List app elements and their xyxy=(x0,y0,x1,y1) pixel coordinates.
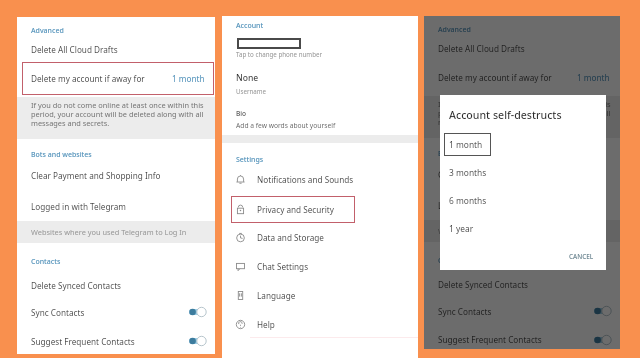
button[interactable]: Data and Storage xyxy=(222,223,418,252)
button[interactable]: Delete All Cloud Drafts xyxy=(424,39,620,57)
button[interactable]: Clear Payment and Shopping Info xyxy=(424,165,620,183)
button[interactable]: Logged in with Telegram xyxy=(17,197,215,215)
button[interactable]: None xyxy=(222,72,418,95)
staticText: Help xyxy=(257,319,275,330)
button[interactable]: 1 year xyxy=(440,220,606,237)
staticText: Delete my account if away for xyxy=(438,72,552,83)
staticText: 1 month xyxy=(577,72,610,83)
staticText: Account xyxy=(236,21,264,31)
staticText: 1 month xyxy=(172,73,205,84)
staticText: 6 months xyxy=(449,195,487,206)
staticText: Privacy and Security xyxy=(257,204,334,215)
staticText: Account self-destructs xyxy=(449,108,562,122)
staticText: Clear Payment and Shopping Info xyxy=(31,170,161,181)
button[interactable] xyxy=(222,38,418,49)
staticText: Suggest Frequent Contacts xyxy=(438,334,542,345)
button[interactable]: Help xyxy=(222,310,418,339)
button[interactable]: Clear Payment and Shopping Info xyxy=(17,166,215,184)
staticText: Sync Contacts xyxy=(31,307,85,318)
button[interactable]: Logged in with Telegram xyxy=(424,196,620,214)
staticText: Settings xyxy=(236,155,264,165)
staticText: Logged in with Telegram xyxy=(438,200,533,211)
staticText: Username xyxy=(236,87,267,95)
staticText: Contacts xyxy=(438,256,468,266)
button[interactable]: Language xyxy=(222,281,418,310)
staticText: Tap to change phone number xyxy=(236,50,322,58)
button[interactable]: CANCEL xyxy=(565,248,598,265)
staticText: Delete Synced Contacts xyxy=(31,280,122,291)
button[interactable]: Delete All Cloud Drafts xyxy=(17,40,215,58)
staticText: Language xyxy=(257,290,296,301)
staticText: CANCEL xyxy=(569,252,594,261)
staticText: Bots and websites xyxy=(31,150,92,160)
staticText: Bio xyxy=(236,109,247,118)
staticText: Delete my account if away for xyxy=(31,73,145,84)
staticText: 1 year xyxy=(449,223,474,234)
staticText: Delete Synced Contacts xyxy=(438,279,529,290)
button[interactable]: Sync Contacts xyxy=(424,301,620,321)
staticText: Delete All Cloud Drafts xyxy=(438,43,525,54)
button[interactable]: Sync Contacts xyxy=(17,302,215,322)
button[interactable]: Bio xyxy=(222,109,418,130)
staticText: Sync Contacts xyxy=(438,306,492,317)
button[interactable]: Suggest Frequent Contacts xyxy=(424,330,620,349)
button[interactable]: Chat Settings xyxy=(222,252,418,281)
staticText: If you do not come online at least once … xyxy=(438,99,615,127)
staticText: If you do not come online at least once … xyxy=(31,100,210,128)
button[interactable]: Delete my account if away for xyxy=(429,61,619,94)
staticText: None xyxy=(236,72,259,84)
staticText: Advanced xyxy=(31,26,64,36)
staticText: Suggest Frequent Contacts xyxy=(31,336,135,347)
staticText: Contacts xyxy=(31,257,61,267)
staticText: Logged in with Telegram xyxy=(31,201,126,212)
staticText: Delete All Cloud Drafts xyxy=(31,44,118,55)
button[interactable]: Suggest Frequent Contacts xyxy=(17,331,215,351)
button[interactable]: 1 month xyxy=(444,133,491,156)
staticText: Clear Payment and Shopping Info xyxy=(438,169,568,180)
button[interactable]: Delete Synced Contacts xyxy=(17,276,215,294)
staticText: Bots and websites xyxy=(438,149,499,159)
staticText: 1 month xyxy=(449,139,483,150)
button[interactable]: Delete my account if away for xyxy=(22,62,214,95)
staticText: Advanced xyxy=(438,25,471,35)
button[interactable]: 6 months xyxy=(440,192,606,209)
button[interactable]: Privacy and Security xyxy=(231,196,355,223)
staticText: 3 months xyxy=(449,167,487,178)
staticText: Add a few words about yourself xyxy=(236,121,336,130)
button[interactable]: 3 months xyxy=(440,164,606,181)
staticText: Data and Storage xyxy=(257,232,324,243)
staticText: Chat Settings xyxy=(257,261,309,272)
button[interactable]: Delete Synced Contacts xyxy=(424,275,620,293)
staticText: Websites where you used Telegram to Log … xyxy=(438,226,594,236)
staticText: Websites where you used Telegram to Log … xyxy=(31,227,187,237)
staticText: Notifications and Sounds xyxy=(257,174,354,185)
button[interactable]: Notifications and Sounds xyxy=(222,165,418,194)
